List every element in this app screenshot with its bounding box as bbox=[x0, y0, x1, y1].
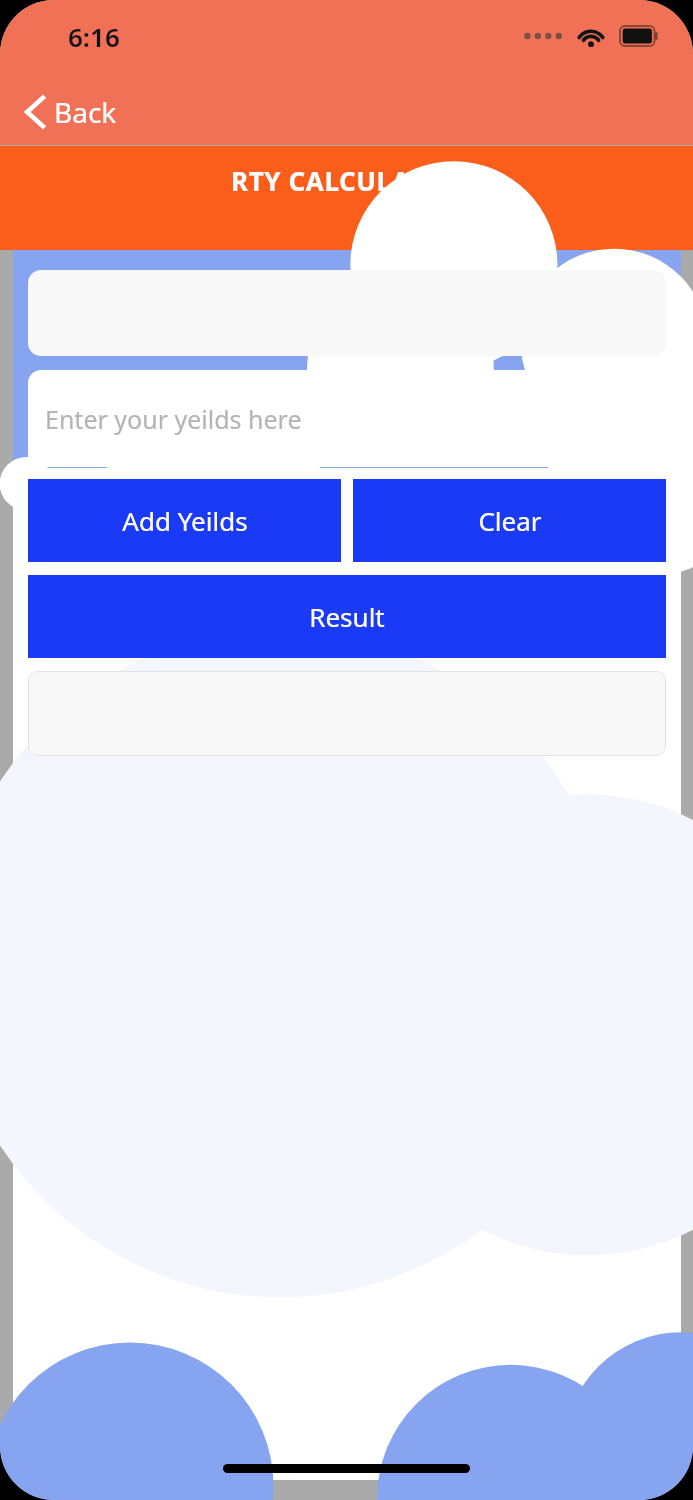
button[interactable]: Clear bbox=[353, 479, 666, 562]
button[interactable] bbox=[28, 671, 666, 756]
staticText: Enter your yeilds here bbox=[45, 402, 302, 436]
staticText: Result bbox=[309, 599, 385, 634]
button[interactable]: Enter your yeilds here bbox=[28, 370, 666, 467]
staticText: 6:16 bbox=[68, 19, 120, 54]
button[interactable]: Add Yeilds bbox=[28, 479, 341, 562]
button[interactable]: Back bbox=[18, 87, 123, 137]
staticText: Back bbox=[54, 93, 117, 131]
staticText: Clear bbox=[478, 503, 542, 538]
button[interactable] bbox=[28, 270, 666, 356]
staticText: RTY CALCULATOR bbox=[231, 163, 463, 198]
staticText: Add Yeilds bbox=[122, 503, 248, 538]
other: Home indicator bbox=[223, 1464, 470, 1473]
button[interactable]: Result bbox=[28, 575, 666, 658]
